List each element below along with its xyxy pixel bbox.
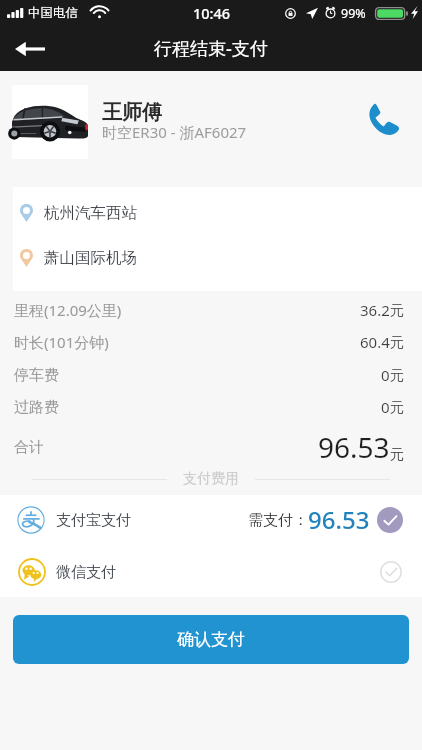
staticText: 微信支付 [56, 563, 116, 582]
staticText: 时长(101分钟) [14, 332, 109, 352]
staticText: 中国电信 [28, 5, 78, 21]
staticText: 0 [381, 397, 390, 417]
staticText: 99% [341, 5, 366, 22]
staticText: 停车费 [14, 366, 59, 385]
staticText: 时空ER30 - 浙AF6027 [102, 122, 247, 142]
button[interactable]: Call driver [360, 97, 406, 143]
staticText: 过路费 [14, 398, 59, 417]
button[interactable]: 微信支付 [0, 546, 422, 597]
staticText: 合计 [14, 438, 44, 457]
button[interactable]: 萧山国际机场 [13, 243, 422, 273]
staticText: 需支付： [248, 511, 308, 530]
staticText: 支付宝支付 [56, 511, 131, 530]
staticText: 60.4 [360, 332, 390, 352]
staticText: 元 [390, 446, 404, 464]
staticText: 里程(12.09公里) [14, 300, 122, 320]
staticText: 元 [390, 367, 404, 385]
staticText: 王师傅 [102, 100, 162, 125]
staticText: 行程结束-支付 [154, 36, 268, 61]
button[interactable]: 支付宝支付 [0, 495, 422, 546]
staticText: 10:46 [193, 3, 231, 23]
staticText: 0 [381, 365, 390, 385]
staticText: 确认支付 [177, 629, 245, 650]
button[interactable]: 杭州汽车西站 [13, 198, 422, 228]
staticText: 杭州汽车西站 [44, 203, 137, 223]
staticText: 96.53 [308, 503, 370, 536]
staticText: 支付费用 [183, 470, 239, 488]
staticText: 96.53 [318, 428, 390, 466]
staticText: 36.2 [360, 300, 390, 320]
staticText: 元 [390, 334, 404, 352]
button[interactable]: 确认支付 [13, 615, 409, 664]
button[interactable]: Back [6, 26, 54, 71]
staticText: 元 [390, 302, 404, 320]
staticText: 元 [390, 399, 404, 417]
staticText: 萧山国际机场 [44, 248, 137, 268]
